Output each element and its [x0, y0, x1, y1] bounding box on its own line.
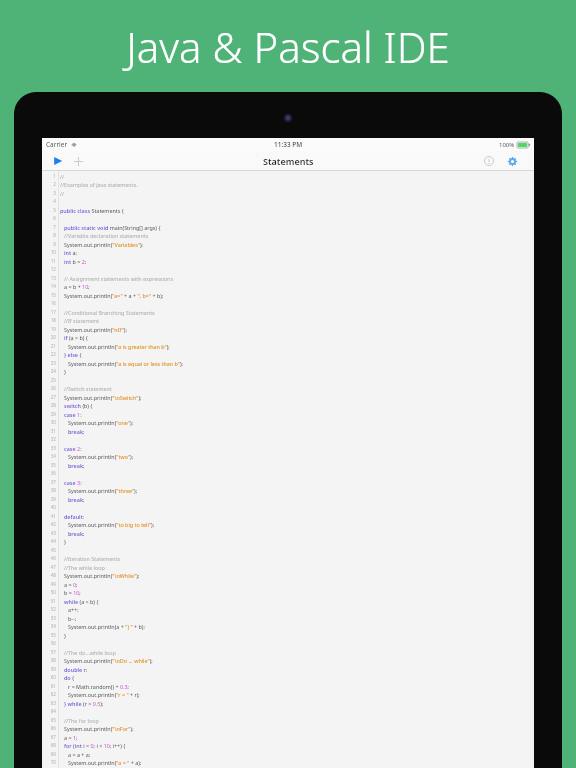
staticText: int b = 2;: [64, 258, 87, 265]
staticText: //: [60, 173, 65, 180]
staticText: //Examples of java statements.: [60, 181, 138, 188]
staticText: 17: [50, 309, 56, 315]
staticText: b--;: [68, 615, 77, 622]
staticText: System.out.println("r = " + r);: [68, 691, 140, 698]
staticText: 16: [50, 300, 56, 306]
staticText: //Variable declaration statements: [64, 232, 149, 239]
staticText: }: [64, 368, 67, 375]
staticText: 56: [50, 640, 56, 646]
staticText: 4: [53, 198, 56, 204]
staticText: System.out.println("Variables");: [64, 241, 143, 248]
staticText: 45: [50, 547, 56, 553]
staticText: }: [64, 632, 67, 639]
staticText: //Switch statement: [64, 385, 112, 392]
staticText: 34: [50, 453, 56, 459]
staticText: 6: [53, 215, 56, 221]
staticText: 48: [50, 572, 56, 578]
staticText: } while (r > 0.5);: [64, 700, 104, 707]
staticText: 26: [50, 385, 56, 391]
staticText: 40: [50, 504, 56, 510]
staticText: 58: [50, 657, 56, 663]
staticText: System.out.println(a + ") " + b);: [68, 623, 145, 630]
staticText: 18: [50, 317, 56, 323]
staticText: a = 1;: [64, 734, 78, 741]
staticText: 29: [50, 411, 56, 417]
staticText: 8: [53, 232, 56, 238]
staticText: 37: [50, 479, 56, 485]
staticText: 43: [50, 530, 56, 536]
staticText: 52: [50, 606, 56, 612]
staticText: break;: [68, 530, 85, 537]
staticText: 32: [50, 436, 56, 442]
staticText: a++;: [68, 606, 79, 613]
staticText: default:: [64, 513, 85, 520]
staticText: 41: [50, 513, 56, 519]
staticText: System.out.println("a = " + a);: [68, 759, 142, 766]
staticText: 11: [50, 258, 56, 264]
button[interactable]: Info: [480, 152, 498, 170]
staticText: 7: [53, 224, 56, 230]
staticText: } else {: [64, 351, 82, 358]
staticText: 62: [50, 691, 56, 697]
staticText: System.out.println("\nFor");: [64, 725, 134, 732]
staticText: b = 10;: [64, 589, 81, 596]
staticText: 33: [50, 445, 56, 451]
staticText: if (a > b) {: [64, 334, 88, 341]
staticText: Carrier: [46, 140, 68, 149]
staticText: 15: [50, 292, 56, 298]
staticText: case 3:: [64, 479, 82, 486]
staticText: 63: [50, 700, 56, 706]
staticText: break;: [68, 496, 85, 503]
staticText: public class Statements {: [60, 207, 124, 214]
staticText: 21: [50, 343, 56, 349]
staticText: 39: [50, 496, 56, 502]
staticText: //The for loop: [64, 717, 99, 724]
staticText: Statements: [263, 155, 314, 167]
staticText: System.out.println("a is equal or less t…: [68, 360, 184, 367]
button[interactable]: Settings: [503, 152, 521, 170]
staticText: 25: [50, 377, 56, 383]
staticText: 2: [53, 181, 56, 187]
staticText: System.out.println("\nSwitch");: [64, 394, 142, 401]
staticText: 14: [50, 283, 56, 289]
staticText: 36: [50, 470, 56, 476]
staticText: int a;: [64, 249, 78, 256]
staticText: 27: [50, 394, 56, 400]
staticText: 28: [50, 402, 56, 408]
staticText: }: [64, 538, 67, 545]
staticText: System.out.println("a is greater than b"…: [68, 343, 170, 350]
staticText: 51: [50, 598, 56, 604]
staticText: 42: [50, 521, 56, 527]
staticText: //: [60, 190, 65, 197]
staticText: System.out.println("to big to tell");: [68, 521, 155, 528]
staticText: for (int i = 0; i < 10; i++) {: [64, 742, 126, 749]
staticText: 22: [50, 351, 56, 357]
button[interactable]: Run: [49, 152, 67, 170]
staticText: 61: [50, 683, 56, 689]
staticText: 100%: [499, 141, 515, 149]
staticText: case 2:: [64, 445, 82, 452]
staticText: System.out.println("a=" + a + ", b=" + b…: [64, 292, 164, 299]
staticText: 55: [50, 632, 56, 638]
staticText: //The do...while loop: [64, 649, 116, 656]
staticText: a = a + a;: [68, 751, 91, 758]
button[interactable]: Add: [69, 152, 87, 170]
staticText: System.out.println("\nDo ... while");: [64, 657, 153, 664]
staticText: 13: [50, 275, 56, 281]
staticText: 50: [50, 589, 56, 595]
staticText: 20: [50, 334, 56, 340]
staticText: public static void main(String[] args) {: [64, 224, 161, 231]
staticText: System.out.println("three");: [68, 487, 138, 494]
staticText: 67: [50, 734, 56, 740]
staticText: break;: [68, 428, 85, 435]
staticText: 12: [50, 266, 56, 272]
staticText: Java & Pascal IDE: [126, 18, 450, 75]
staticText: 70: [50, 759, 56, 765]
staticText: 3: [53, 190, 56, 196]
staticText: // Assignment statements with expression…: [64, 275, 173, 282]
staticText: switch (b) {: [64, 402, 93, 409]
staticText: break;: [68, 462, 85, 469]
staticText: case 1:: [64, 411, 82, 418]
staticText: double r;: [64, 666, 88, 673]
staticText: 35: [50, 462, 56, 468]
